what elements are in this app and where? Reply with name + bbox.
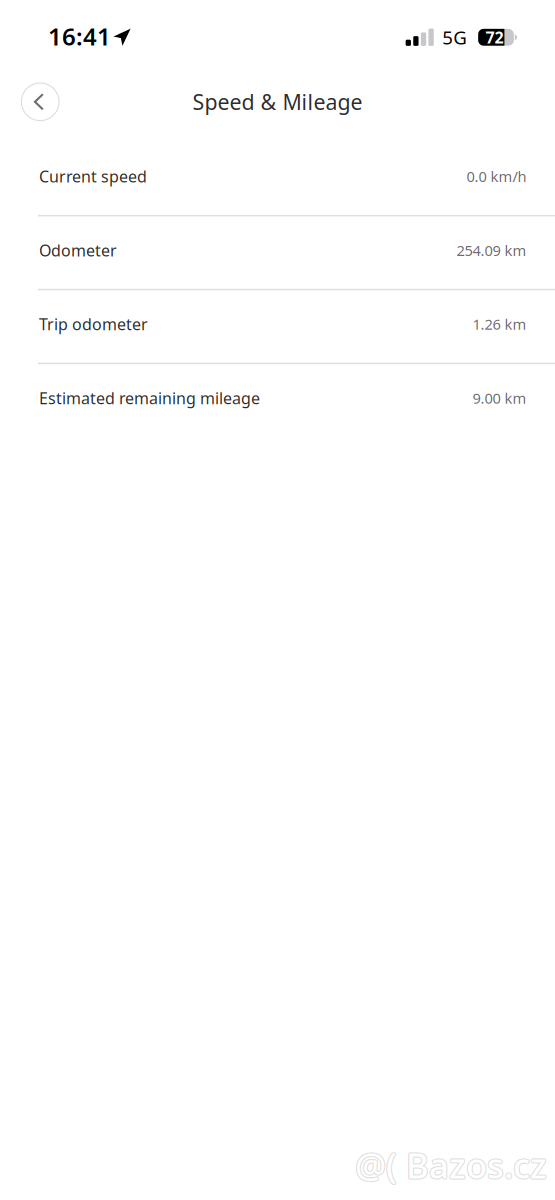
staticText: @( Bazos.cz [356, 1142, 548, 1188]
staticText: @( Bazos.cz [356, 1141, 548, 1187]
staticText: 16:41 [48, 20, 111, 52]
button[interactable]: Estimated remaining mileage [0, 364, 555, 438]
staticText: @( Bazos.cz [354, 1141, 546, 1187]
staticText: 254.09 km [456, 240, 526, 260]
staticText: 5G [442, 25, 467, 50]
staticText: 72 [486, 27, 504, 48]
staticText: Speed & Mileage [192, 88, 362, 116]
staticText: 0.0 km/h [466, 167, 526, 186]
staticText: Trip odometer [39, 313, 148, 335]
button[interactable]: Back [21, 83, 59, 121]
staticText: @( Bazos.cz [355, 1142, 547, 1188]
button[interactable]: Current speed [0, 142, 555, 216]
button[interactable]: Trip odometer [0, 290, 555, 364]
button[interactable]: Odometer [0, 216, 555, 290]
staticText: 1.26 km [472, 314, 526, 334]
staticText: Odometer [39, 240, 117, 261]
staticText: @( Bazos.cz [355, 1143, 547, 1189]
staticText: 9.00 km [472, 388, 526, 408]
staticText: Current speed [39, 166, 147, 187]
staticText: @( Bazos.cz [355, 1141, 547, 1187]
staticText: @( Bazos.cz [356, 1143, 548, 1189]
staticText: @( Bazos.cz [354, 1143, 546, 1189]
staticText: @( Bazos.cz [354, 1142, 546, 1188]
staticText: Estimated remaining mileage [39, 387, 260, 409]
